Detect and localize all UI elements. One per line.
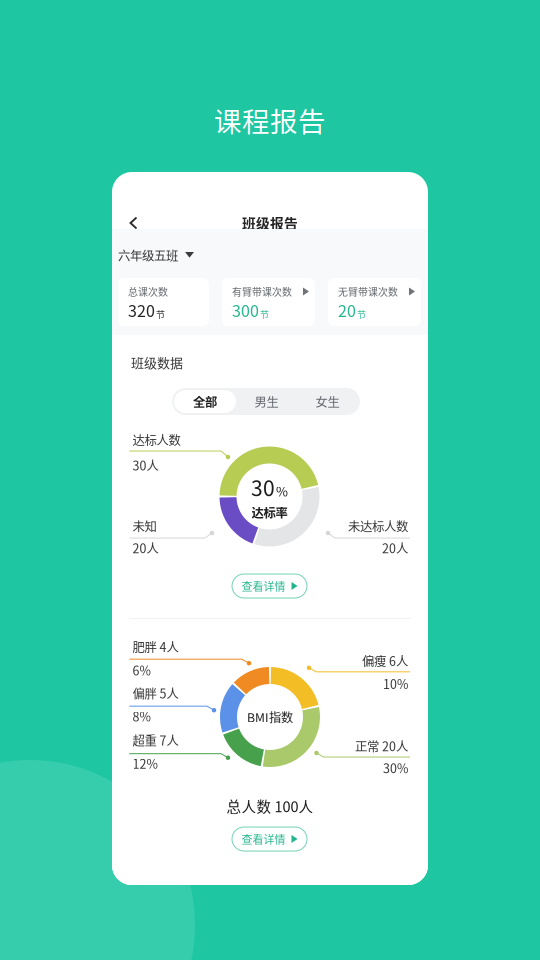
staticText: 班级数据 (131, 353, 183, 371)
staticText: 查看详情 (241, 831, 285, 847)
staticText: 班级报告 (242, 213, 298, 233)
staticText: 320 (128, 298, 155, 322)
staticText: 300 (232, 298, 259, 322)
staticText: 未达标人数 (348, 517, 408, 535)
staticText: % (276, 481, 288, 500)
staticText: 节 (260, 308, 269, 321)
staticText: 6% (133, 661, 151, 679)
staticText: 男生 (254, 393, 278, 410)
button[interactable]: 查看详情 (232, 827, 307, 851)
button[interactable]: 查看详情 (232, 574, 307, 598)
staticText: BMI指数 (247, 708, 293, 726)
staticText: 30 (251, 472, 275, 502)
staticText: 超重 7人 (133, 731, 179, 749)
button[interactable]: 无臂带课次数 (328, 278, 421, 326)
staticText: 12% (133, 754, 158, 772)
staticText: 正常 20人 (355, 737, 408, 755)
staticText: 20人 (133, 539, 159, 557)
staticText: 节 (156, 308, 165, 321)
button[interactable]: 全部 (174, 390, 236, 413)
staticText: 达标人数 (133, 431, 181, 449)
button[interactable]: 有臂带课次数 (222, 278, 315, 326)
staticText: 全部 (193, 393, 217, 410)
staticText: 无臂带课次数 (338, 284, 398, 299)
staticText: 偏胖 5人 (133, 684, 179, 702)
staticText: 六年级五班 (118, 246, 178, 264)
staticText: 肥胖 4人 (133, 638, 179, 656)
staticText: 节 (357, 308, 366, 321)
staticText: 有臂带课次数 (232, 284, 292, 299)
staticText: 10% (383, 674, 408, 692)
button[interactable]: 总课次数 (118, 278, 209, 326)
staticText: 课程报告 (214, 100, 326, 140)
staticText: 达标率 (251, 503, 287, 521)
button[interactable]: 男生 (236, 390, 297, 413)
staticText: 查看详情 (241, 578, 285, 594)
staticText: 未知 (133, 517, 157, 535)
staticText: 偏瘦 6人 (362, 652, 408, 670)
button[interactable]: 返回 (117, 207, 150, 238)
staticText: 8% (133, 707, 151, 725)
staticText: 20人 (382, 539, 408, 557)
staticText: 30% (383, 759, 408, 777)
staticText: 30人 (133, 456, 159, 474)
button[interactable]: 六年级五班 (112, 241, 200, 269)
staticText: 女生 (315, 393, 339, 410)
button[interactable]: 女生 (297, 390, 358, 413)
staticText: 总人数 100人 (226, 795, 313, 816)
staticText: 总课次数 (128, 284, 168, 299)
staticText: 20 (338, 298, 356, 322)
